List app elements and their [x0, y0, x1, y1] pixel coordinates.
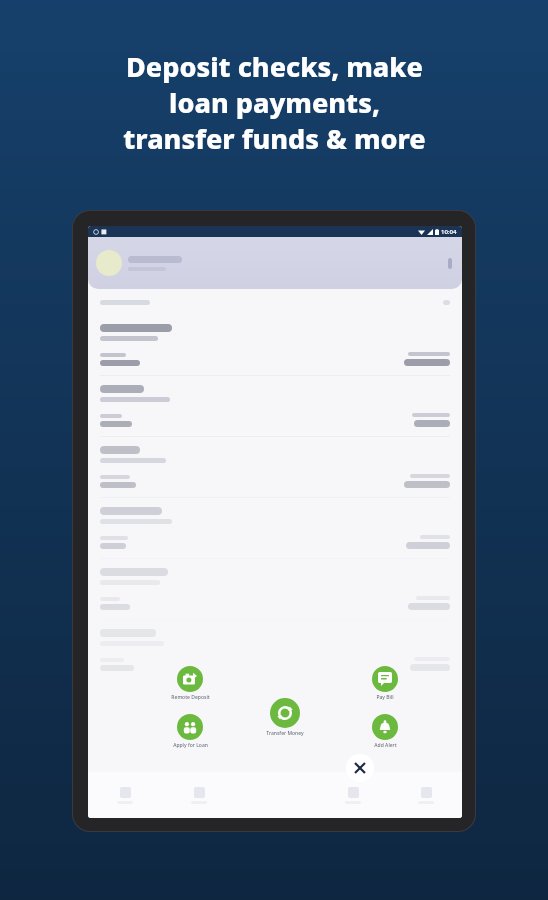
button[interactable]: Add Alert	[353, 714, 417, 749]
staticText: Pay Bill	[376, 694, 394, 701]
button[interactable]	[88, 289, 462, 315]
button[interactable]: Transfer	[316, 772, 389, 818]
staticText: Add Alert	[374, 742, 397, 749]
button[interactable]	[88, 498, 462, 559]
button[interactable]	[88, 620, 462, 681]
staticText: Deposit checks, make loan payments, tran…	[123, 48, 426, 157]
button[interactable]: Remote Deposit	[158, 666, 222, 701]
button[interactable]: Profile	[448, 258, 452, 269]
button[interactable]: More	[389, 772, 462, 818]
button[interactable]: Pay Bill	[353, 666, 417, 701]
button[interactable]: Apply for Loan	[158, 714, 222, 749]
staticText: Apply for Loan	[173, 742, 208, 749]
button[interactable]: Deposit	[162, 772, 235, 818]
staticText: Remote Deposit	[171, 694, 210, 701]
staticText: Transfer Money	[266, 730, 304, 737]
button[interactable]	[88, 559, 462, 620]
button[interactable]: Accounts	[88, 772, 162, 818]
button[interactable]	[88, 376, 462, 437]
button[interactable]: Close menu	[346, 754, 374, 782]
button[interactable]: Transfer Money	[253, 698, 317, 737]
staticText: 10:04	[441, 228, 457, 236]
button[interactable]	[88, 315, 462, 376]
button[interactable]: Profile	[88, 237, 462, 289]
button[interactable]	[88, 437, 462, 498]
